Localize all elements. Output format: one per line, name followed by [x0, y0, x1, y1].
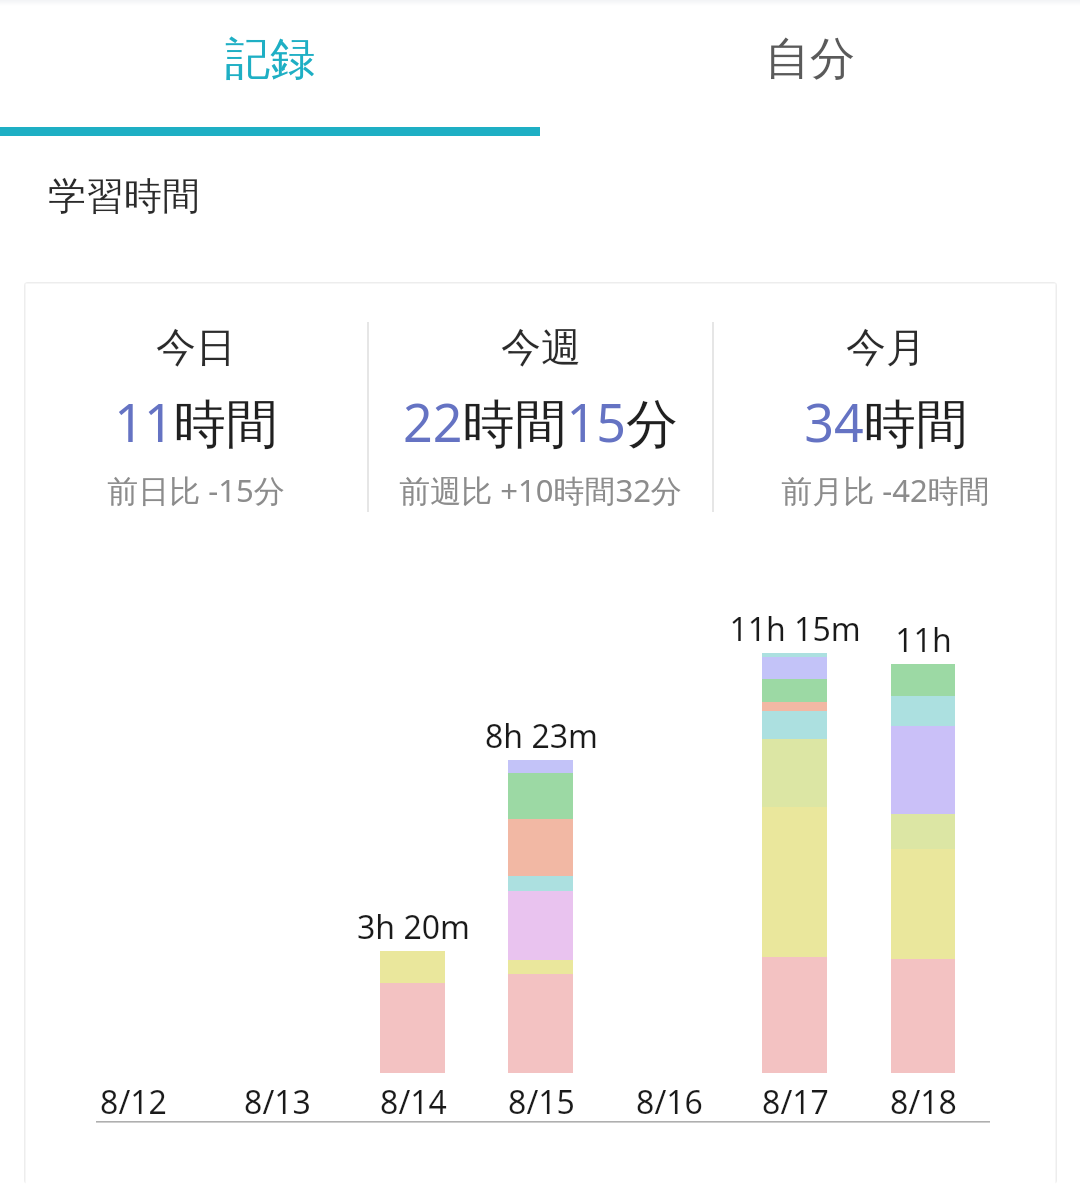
staticText: 今月 — [846, 322, 926, 372]
staticText: 記録 — [225, 31, 315, 88]
button[interactable]: 記録 — [0, 6, 540, 136]
staticText: 8h 23m — [485, 714, 598, 758]
staticText: 8/16 — [636, 1080, 703, 1124]
button[interactable]: 今月 — [714, 322, 1057, 522]
staticText: 前週比 +10時間32分 — [399, 469, 682, 511]
staticText: 8/15 — [508, 1080, 575, 1124]
staticText: 8/14 — [380, 1080, 447, 1124]
button[interactable]: 今日 — [24, 322, 367, 522]
staticText: 11時間 — [114, 386, 278, 457]
staticText: 8/17 — [762, 1080, 829, 1124]
staticText: 今日 — [156, 322, 236, 372]
staticText: 前月比 -42時間 — [781, 469, 990, 511]
staticText: 8/18 — [890, 1080, 957, 1124]
staticText: 11h 15m — [729, 607, 861, 651]
button[interactable]: 自分 — [540, 6, 1080, 136]
staticText: 自分 — [765, 31, 855, 88]
staticText: 学習時間 — [48, 172, 200, 220]
staticText: 前日比 -15分 — [107, 469, 285, 511]
staticText: 今週 — [501, 322, 581, 372]
staticText: 22時間15分 — [403, 386, 678, 457]
staticText: 3h 20m — [357, 905, 470, 949]
staticText: 11h — [895, 618, 952, 662]
staticText: 34時間 — [804, 386, 968, 457]
staticText: 8/12 — [100, 1080, 167, 1124]
staticText: 8/13 — [244, 1080, 311, 1124]
button[interactable]: 今週 — [369, 322, 712, 522]
